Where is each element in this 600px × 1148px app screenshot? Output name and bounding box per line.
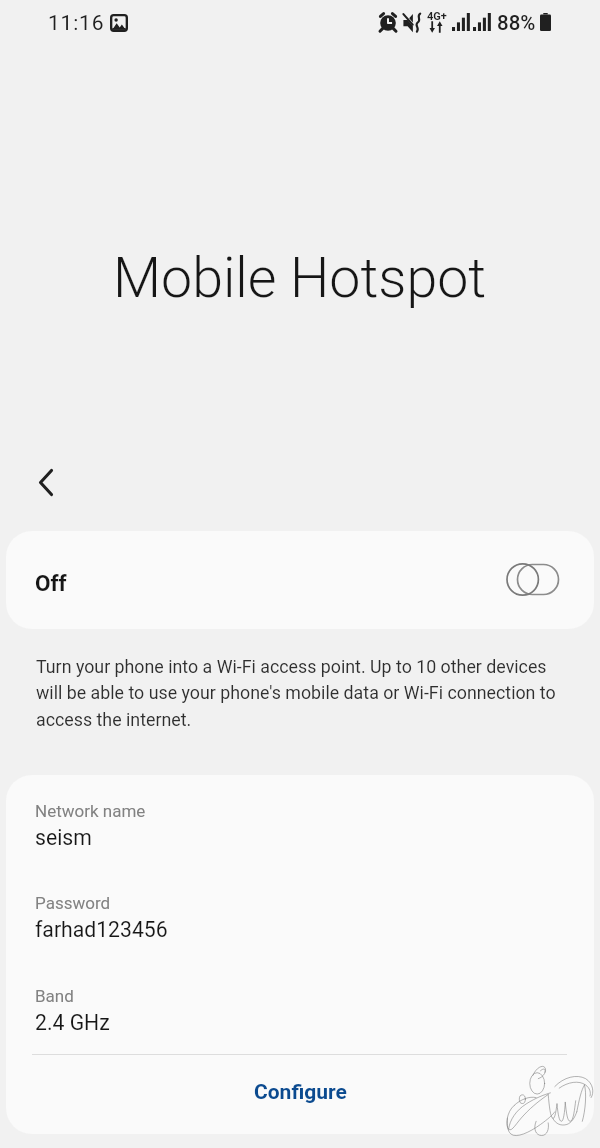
staticText: 88%	[497, 11, 536, 35]
staticText: seism	[35, 825, 92, 850]
staticText: 4G+	[427, 10, 447, 23]
staticText: Network name	[35, 801, 146, 821]
staticText: Configure	[254, 1080, 347, 1105]
button[interactable]: Off	[6, 531, 594, 629]
button[interactable]: Back	[12, 448, 80, 516]
staticText: farhad123456	[35, 917, 168, 942]
staticText: Band	[35, 986, 74, 1006]
button[interactable]: Turn mobile hotspot on	[498, 556, 568, 604]
staticText: 2.4 GHz	[35, 1010, 110, 1035]
button[interactable]: Configure	[6, 1053, 594, 1132]
staticText: Mobile Hotspot	[113, 246, 487, 311]
staticText: Turn your phone into a Wi-Fi access poin…	[36, 656, 566, 731]
staticText: Password	[35, 893, 111, 913]
staticText: Off	[35, 570, 67, 596]
staticText: 11:16	[48, 11, 105, 36]
